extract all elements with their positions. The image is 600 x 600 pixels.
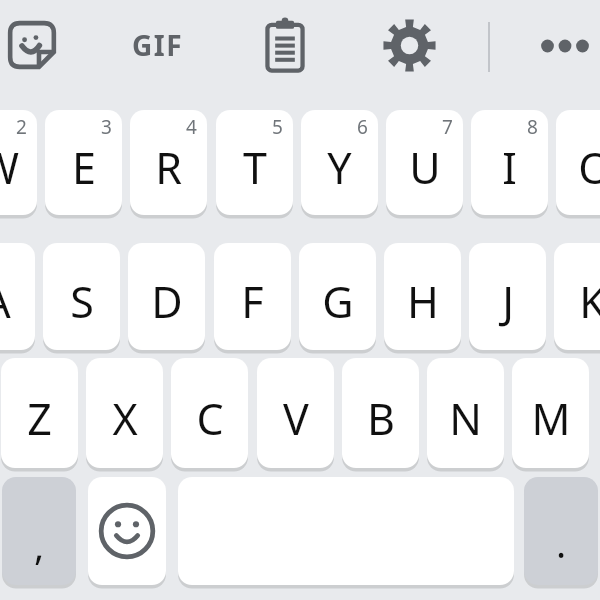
button[interactable]: . xyxy=(524,477,598,585)
staticText: B xyxy=(367,389,395,448)
staticText: S xyxy=(70,272,94,331)
staticText: W xyxy=(0,138,19,197)
staticText: Y xyxy=(327,138,352,197)
button[interactable]: X xyxy=(86,358,163,468)
staticText: F xyxy=(241,272,264,331)
button[interactable]: K xyxy=(554,243,600,350)
staticText: 8 xyxy=(527,114,538,140)
button[interactable]: Stickers xyxy=(4,16,60,74)
staticText: M xyxy=(531,389,571,448)
staticText: 5 xyxy=(272,114,283,140)
button[interactable]: Emoji xyxy=(88,477,166,585)
staticText: . xyxy=(556,517,567,569)
staticText: , xyxy=(34,519,45,571)
button[interactable]: E xyxy=(45,110,122,215)
staticText: G xyxy=(322,272,354,331)
button[interactable]: Z xyxy=(1,358,78,468)
button[interactable]: , xyxy=(2,477,76,585)
staticText: 7 xyxy=(442,114,453,140)
staticText: X xyxy=(112,389,138,448)
staticText: N xyxy=(449,389,482,448)
staticText: A xyxy=(0,272,11,331)
staticText: GIF xyxy=(132,26,184,64)
button[interactable]: G xyxy=(299,243,376,350)
button[interactable]: J xyxy=(469,243,546,350)
button[interactable]: C xyxy=(171,358,248,468)
staticText: H xyxy=(407,272,439,331)
button[interactable]: O xyxy=(556,110,600,215)
staticText: O xyxy=(578,138,600,197)
button[interactable]: More options xyxy=(536,19,594,73)
button[interactable]: I xyxy=(471,110,548,215)
button[interactable]: R xyxy=(130,110,207,215)
button[interactable]: GIF xyxy=(124,17,192,73)
button[interactable]: W xyxy=(0,110,37,215)
button[interactable]: T xyxy=(216,110,293,215)
button[interactable]: A xyxy=(0,243,35,350)
staticText: 6 xyxy=(357,114,368,140)
staticText: 3 xyxy=(101,114,112,140)
staticText: E xyxy=(72,138,96,197)
button[interactable]: N xyxy=(427,358,504,468)
button[interactable]: B xyxy=(342,358,419,468)
staticText: 4 xyxy=(186,114,197,140)
staticText: C xyxy=(196,389,224,448)
button[interactable]: S xyxy=(43,243,120,350)
button[interactable]: F xyxy=(214,243,291,350)
button[interactable]: Clipboard xyxy=(257,14,313,76)
button[interactable]: Y xyxy=(301,110,378,215)
button[interactable]: M xyxy=(512,358,589,468)
staticText: 2 xyxy=(16,114,27,140)
staticText: T xyxy=(243,138,267,197)
button[interactable]: H xyxy=(384,243,461,350)
button[interactable]: U xyxy=(386,110,463,215)
staticText: I xyxy=(502,138,517,197)
staticText: U xyxy=(409,138,441,197)
staticText: K xyxy=(579,272,600,331)
staticText: R xyxy=(155,138,182,197)
button[interactable]: V xyxy=(257,358,334,468)
button[interactable]: Settings xyxy=(382,18,437,73)
staticText: J xyxy=(502,272,514,331)
staticText: V xyxy=(283,389,309,448)
staticText: D xyxy=(151,272,183,331)
staticText: Z xyxy=(27,389,52,448)
button[interactable]: D xyxy=(128,243,205,350)
